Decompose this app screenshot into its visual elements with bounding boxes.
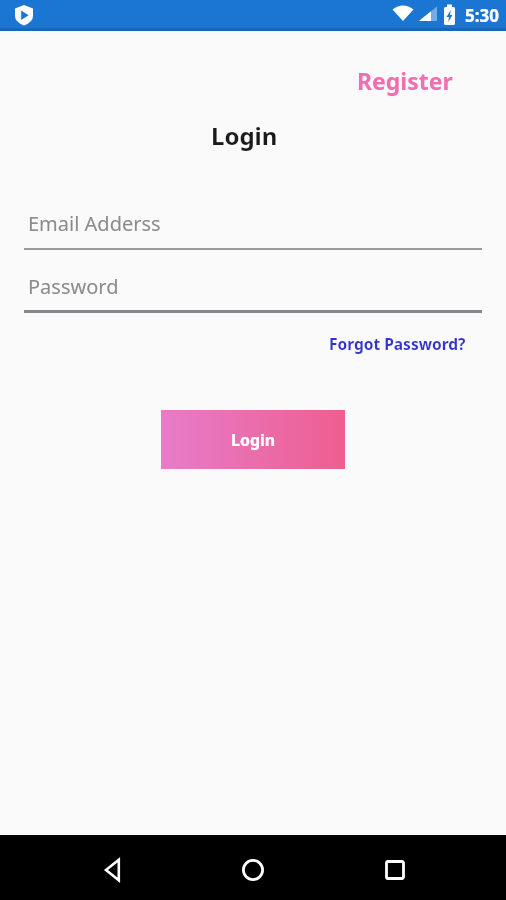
button[interactable]: Password [0, 271, 506, 313]
button[interactable] [371, 846, 419, 894]
button[interactable]: Forgot Password? [327, 331, 468, 356]
button[interactable]: Login [161, 410, 345, 469]
button[interactable]: Register [353, 61, 457, 100]
staticText: Password [28, 273, 119, 300]
staticText: Login [211, 119, 278, 152]
button[interactable] [229, 846, 277, 894]
staticText: Email Adderss [28, 210, 161, 237]
button[interactable] [89, 846, 137, 894]
button[interactable]: Email Adderss [0, 208, 506, 250]
staticText: Login [231, 429, 276, 451]
staticText: Register [357, 65, 453, 96]
staticText: 5:30 [465, 4, 499, 27]
staticText: Forgot Password? [329, 333, 466, 354]
